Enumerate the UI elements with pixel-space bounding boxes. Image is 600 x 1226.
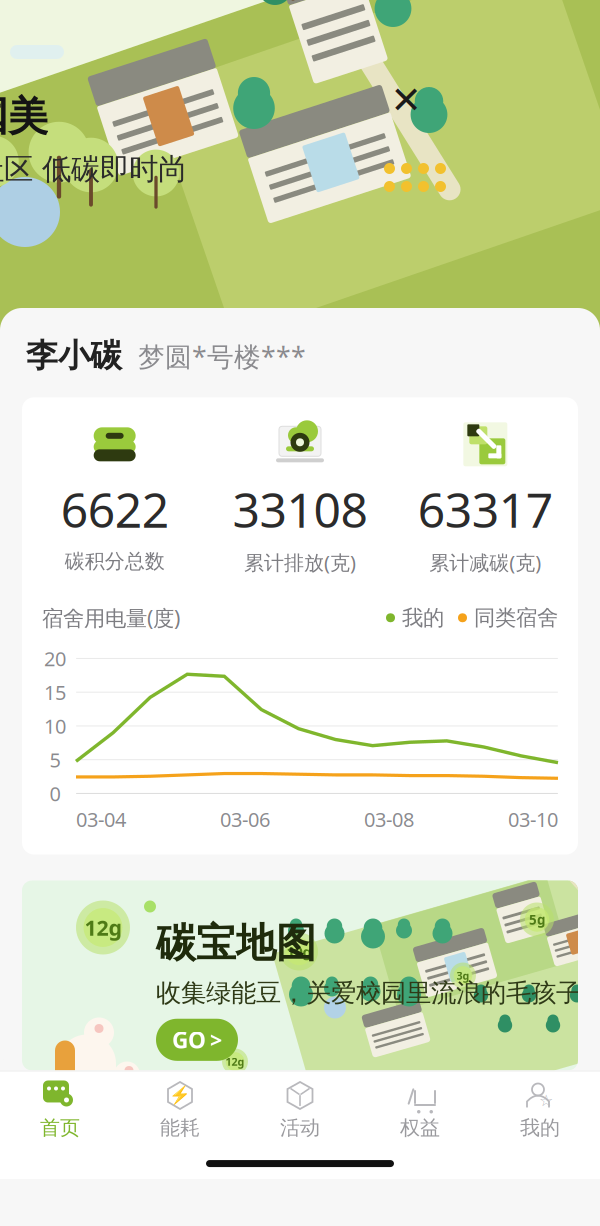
staticText: 63317 [418,477,553,541]
button[interactable]: 关闭 [384,78,428,122]
staticText: 低碳国美 [0,92,48,141]
staticText: > [210,1026,222,1054]
staticText: 03-10 [508,806,558,832]
staticText: 碳积分总数 [65,549,165,574]
staticText: 10g [286,942,311,961]
staticText: 5g [529,911,545,928]
staticText: 梦圆*号楼*** [138,339,306,374]
staticText: ☆ [539,1091,553,1109]
staticText: 累计减碳(克) [429,549,541,576]
staticText: 李小碳 [26,336,122,375]
staticText: 0 [49,780,60,807]
staticText: 首页 [40,1115,80,1140]
staticText: 12g [225,1054,244,1069]
staticText: 权益 [400,1115,440,1140]
button[interactable]: ⚡ [120,1073,240,1144]
button[interactable]: 权益 [360,1073,480,1144]
staticText: 6622 [61,477,169,541]
staticText: 5 [49,746,60,773]
staticText: 碳宝地图 [156,918,316,968]
staticText: 收集绿能豆，关爱校园里流浪的毛孩子 [156,978,581,1009]
button[interactable]: ☆ [480,1073,600,1144]
staticText: 15 [44,679,66,705]
staticText: 03-08 [364,806,414,832]
staticText: 03-04 [76,806,126,832]
staticText: 20 [44,645,66,672]
staticText: ⚡ [169,1086,191,1105]
button[interactable]: 首页 [0,1073,120,1144]
staticText: 03-06 [220,806,270,832]
staticText: 活动 [280,1115,320,1140]
staticText: 同类宿舍 [474,605,558,631]
staticText: 宿舍用电量(度) [42,604,180,632]
staticText: GO [172,1025,206,1055]
staticText: 12g [84,913,121,942]
staticText: 10 [44,713,66,739]
staticText: 累计排放(克) [244,549,356,576]
staticText: 学院即社区 低碳即时尚 [0,151,187,187]
button[interactable]: 活动 [240,1073,360,1144]
staticText: 我的 [520,1115,560,1140]
staticText: ✕ [390,79,421,121]
staticText: 能耗 [160,1115,200,1140]
button[interactable]: GO [156,1019,238,1061]
staticText: 33108 [232,477,367,541]
staticText: 3g [456,968,469,983]
staticText: 我的 [402,605,444,631]
